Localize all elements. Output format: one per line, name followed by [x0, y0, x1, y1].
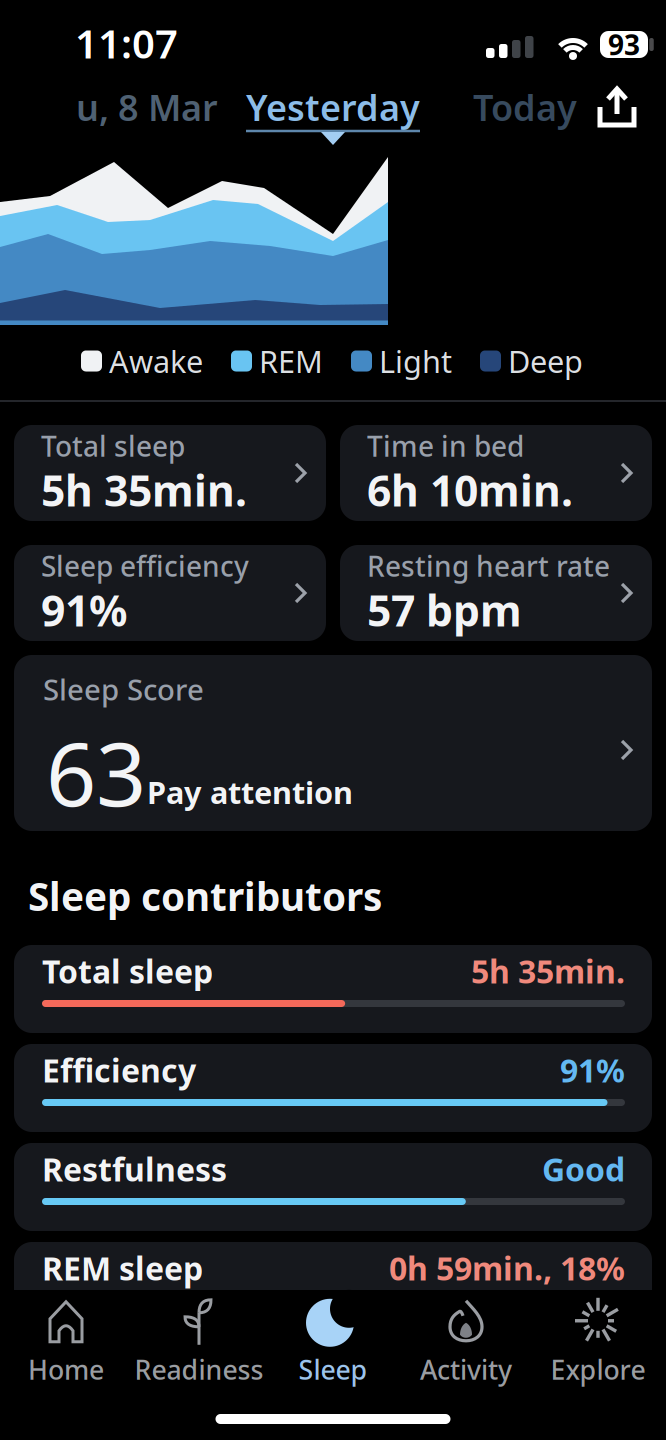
button[interactable]: Home	[28, 1295, 104, 1387]
staticText: Total sleep	[42, 950, 213, 992]
staticText: Sleep efficiency	[41, 547, 249, 585]
staticText: Sleep contributors	[28, 870, 382, 922]
staticText: 91%	[41, 582, 127, 638]
staticText: Sleep Score	[43, 669, 204, 708]
staticText: Restfulness	[42, 1148, 227, 1190]
button[interactable]: Activity	[420, 1295, 512, 1387]
staticText: Explore	[550, 1352, 645, 1387]
staticText: Good	[542, 1148, 625, 1190]
button[interactable]: u, 8 Mar	[76, 83, 256, 131]
staticText: Light	[379, 341, 452, 381]
staticText: 5h 35min.	[41, 462, 247, 518]
staticText: Total sleep	[41, 427, 185, 465]
staticText: Yesterday	[246, 83, 420, 131]
staticText: Efficiency	[42, 1049, 196, 1091]
button[interactable]: Sleep Score	[14, 655, 652, 831]
button[interactable]: Today	[473, 83, 577, 131]
button[interactable]: Sleep efficiency	[14, 545, 326, 641]
button[interactable]: Total sleep	[14, 425, 326, 521]
staticText: Activity	[420, 1352, 512, 1387]
staticText: Time in bed	[367, 427, 524, 465]
button[interactable]: Total sleep	[14, 945, 652, 1033]
staticText: 0h 59min., 18%	[389, 1247, 625, 1289]
button[interactable]: Yesterday	[246, 83, 420, 131]
staticText: 11:07	[75, 16, 178, 69]
staticText: u, 8 Mar	[76, 83, 218, 131]
staticText: REM sleep	[42, 1247, 203, 1289]
button[interactable]: Readiness	[134, 1295, 263, 1387]
staticText: 6h 10min.	[367, 462, 573, 518]
staticText: 93	[608, 26, 640, 63]
button[interactable]: Resting heart rate	[340, 545, 652, 641]
button[interactable]: Restfulness	[14, 1143, 652, 1231]
button[interactable]: Sleep	[298, 1295, 367, 1387]
button[interactable]: Efficiency	[14, 1044, 652, 1132]
staticText: Deep	[508, 341, 583, 381]
staticText: Today	[473, 83, 577, 131]
staticText: 91%	[560, 1049, 625, 1091]
staticText: Home	[28, 1352, 104, 1387]
staticText: Resting heart rate	[367, 547, 610, 585]
button[interactable]: REM sleep	[14, 1242, 652, 1330]
staticText: REM	[259, 341, 323, 381]
staticText: Awake	[109, 341, 203, 381]
staticText: 63	[46, 714, 146, 830]
button[interactable]: Time in bed	[340, 425, 652, 521]
button[interactable]: Explore	[550, 1295, 645, 1387]
staticText: Readiness	[134, 1352, 263, 1387]
staticText: Sleep	[298, 1352, 367, 1387]
staticText: Pay attention	[147, 772, 353, 812]
staticText: 5h 35min.	[471, 950, 625, 992]
staticText: 57 bpm	[367, 582, 522, 638]
button[interactable]: Share	[594, 83, 640, 129]
